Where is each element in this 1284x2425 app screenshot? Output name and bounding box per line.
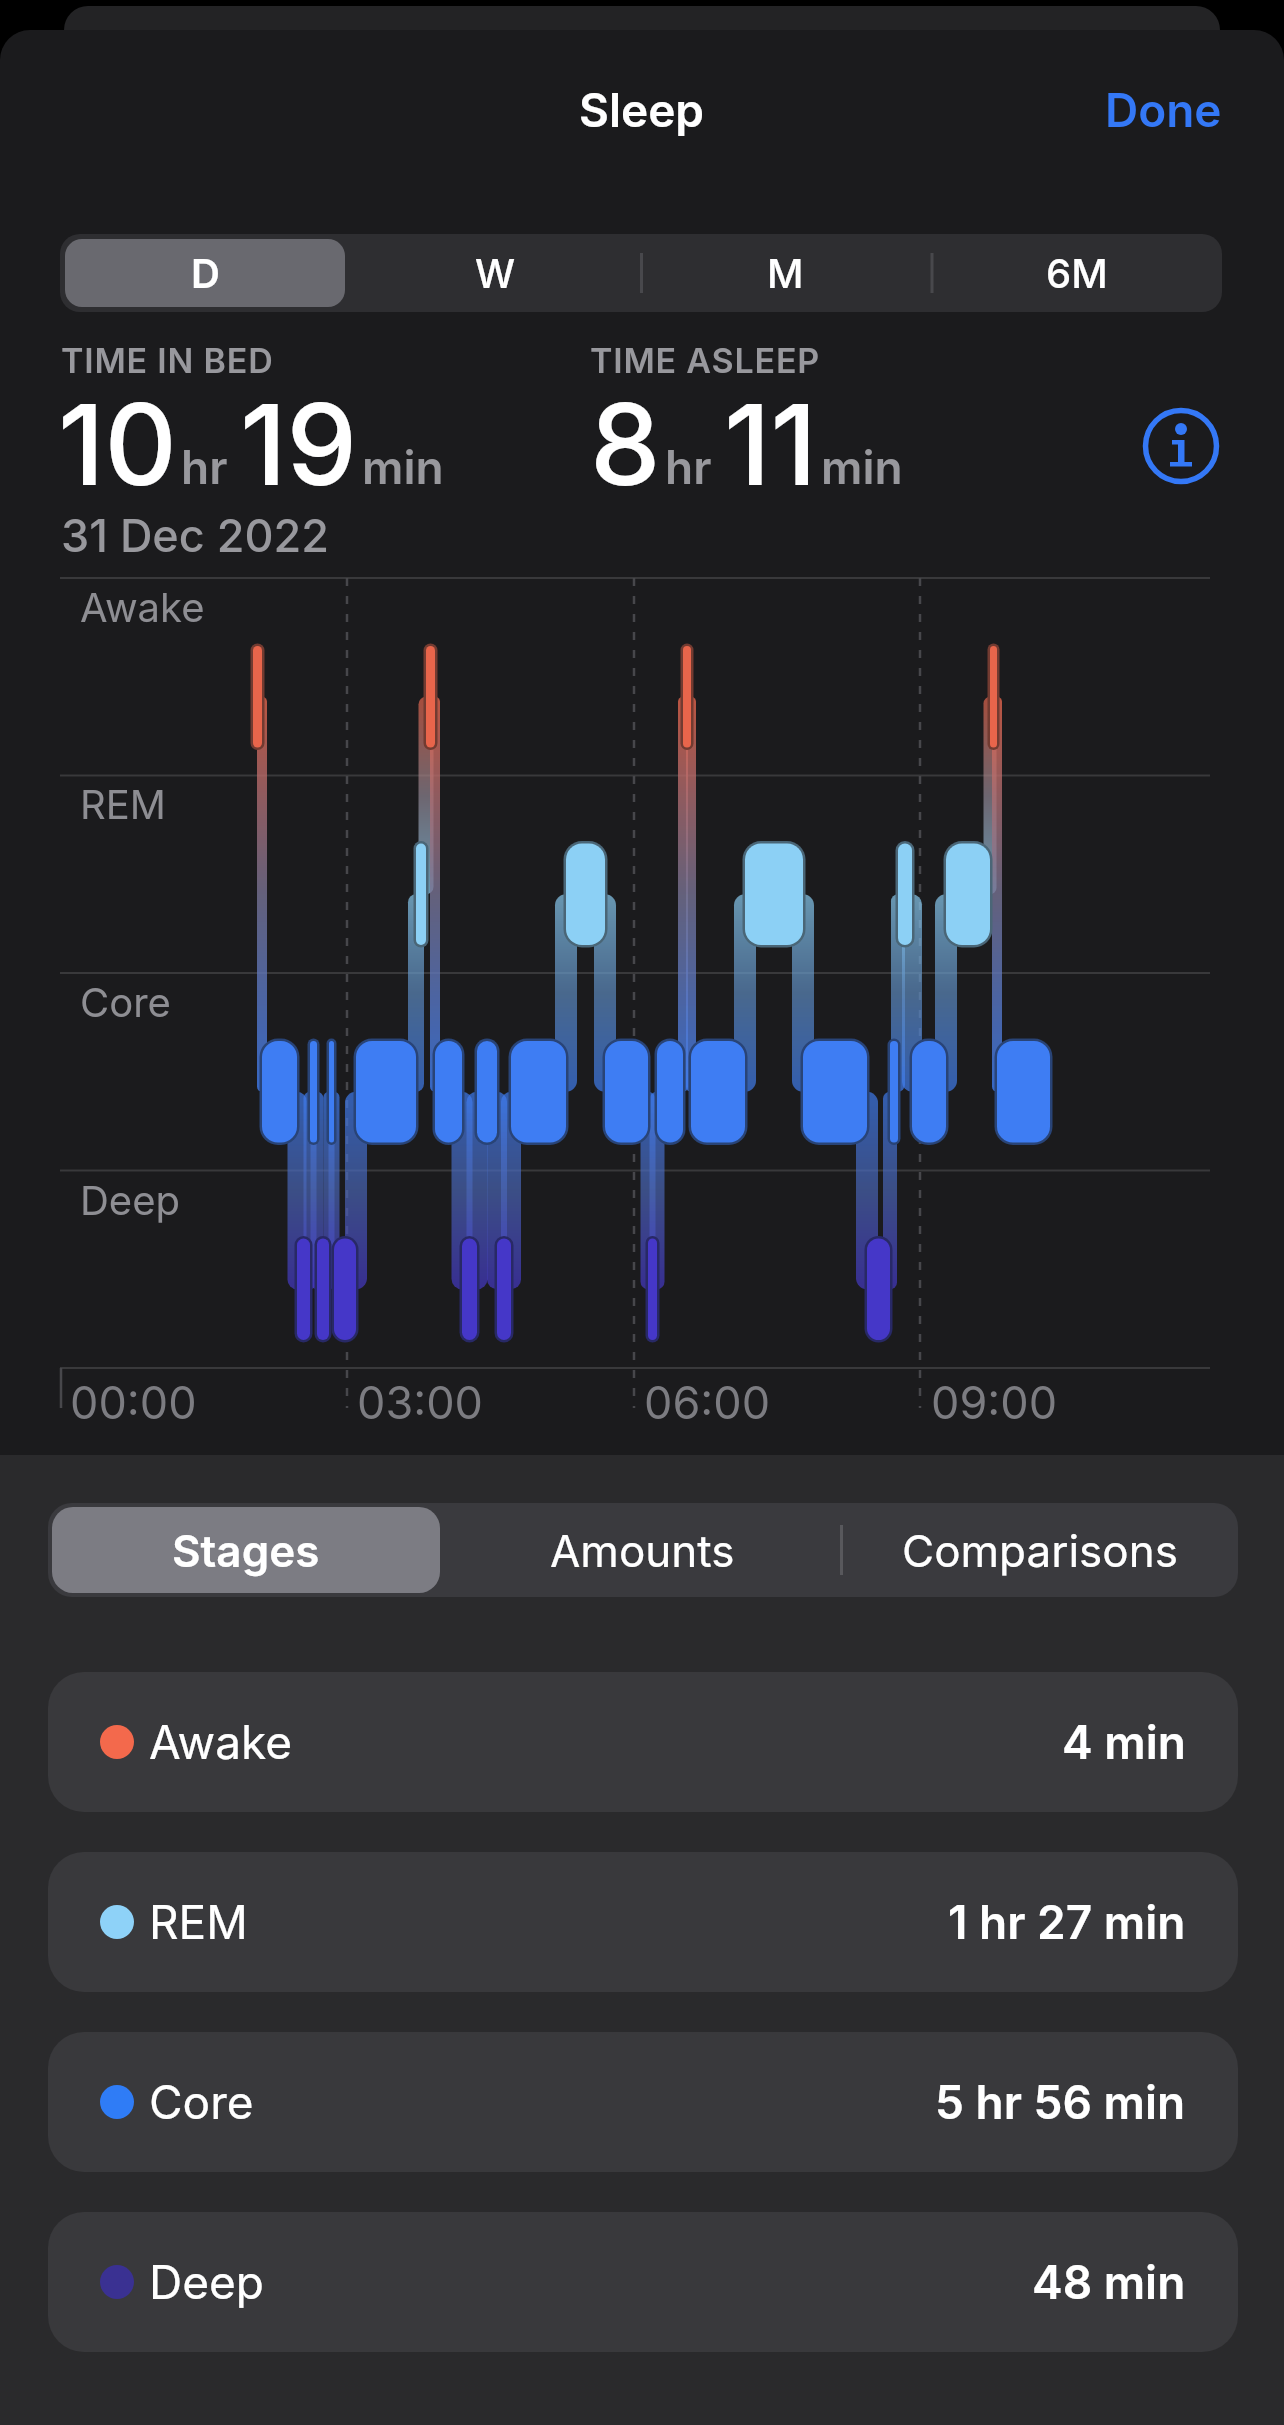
- staticText: REM: [149, 1894, 248, 1950]
- staticText: 00:00: [70, 1375, 197, 1429]
- button[interactable]: Core: [48, 2032, 1238, 2172]
- button[interactable]: [65, 239, 345, 307]
- button[interactable]: [1140, 405, 1222, 487]
- staticText: min: [362, 439, 444, 495]
- staticText: Awake: [80, 583, 205, 631]
- staticText: W: [475, 249, 516, 297]
- staticText: D: [191, 249, 220, 297]
- staticText: Stages: [172, 1524, 320, 1577]
- button[interactable]: [52, 1507, 440, 1593]
- staticText: TIME ASLEEP: [590, 340, 820, 381]
- staticText: Sleep: [579, 82, 705, 138]
- button[interactable]: Stages: [48, 1503, 444, 1597]
- staticText: 03:00: [357, 1375, 483, 1429]
- button[interactable]: D: [60, 234, 350, 312]
- staticText: 48 min: [1032, 2254, 1186, 2310]
- staticText: Done: [1105, 82, 1222, 138]
- button[interactable]: 6M: [931, 234, 1222, 312]
- staticText: hr: [181, 439, 228, 495]
- staticText: 1 hr 27 min: [948, 1894, 1186, 1950]
- button[interactable]: Done: [1105, 82, 1222, 138]
- staticText: Awake: [149, 1714, 293, 1770]
- staticText: 31 Dec 2022: [61, 508, 330, 562]
- button[interactable]: Amounts: [444, 1503, 841, 1597]
- staticText: TIME IN BED: [61, 340, 274, 381]
- staticText: 09:00: [931, 1375, 1058, 1429]
- staticText: 4 min: [1062, 1714, 1186, 1770]
- staticText: hr: [665, 439, 712, 495]
- staticText: REM: [80, 780, 166, 828]
- button[interactable]: Comparisons: [841, 1503, 1238, 1597]
- staticText: Amounts: [550, 1524, 735, 1577]
- staticText: M: [767, 249, 804, 297]
- button[interactable]: Awake: [48, 1672, 1238, 1812]
- staticText: 8: [590, 376, 661, 512]
- button[interactable]: W: [350, 234, 640, 312]
- staticText: min: [821, 439, 903, 495]
- staticText: Comparisons: [902, 1524, 1178, 1577]
- staticText: Deep: [149, 2254, 264, 2310]
- staticText: 5 hr 56 min: [935, 2074, 1186, 2130]
- button[interactable]: REM: [48, 1852, 1238, 1992]
- staticText: Core: [149, 2074, 254, 2130]
- button[interactable]: Deep: [48, 2212, 1238, 2352]
- staticText: Core: [80, 978, 171, 1026]
- staticText: 06:00: [644, 1375, 771, 1429]
- staticText: 6M: [1046, 249, 1108, 297]
- button[interactable]: M: [640, 234, 931, 312]
- staticText: 11: [724, 376, 817, 512]
- staticText: 10: [58, 376, 177, 512]
- staticText: Deep: [80, 1176, 180, 1224]
- staticText: 19: [240, 376, 358, 512]
